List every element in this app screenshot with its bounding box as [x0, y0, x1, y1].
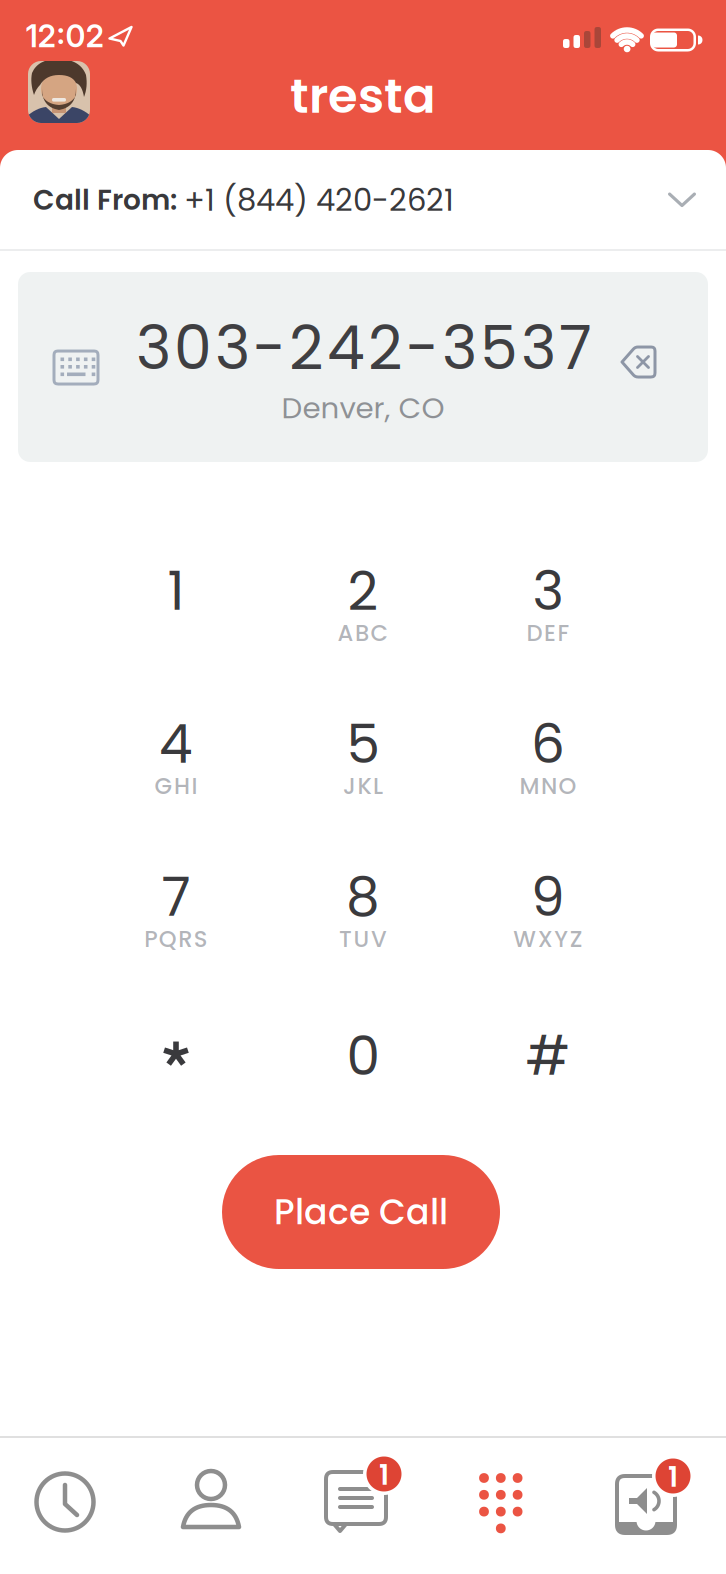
staticText: JKL: [343, 770, 383, 802]
staticText: 8: [346, 860, 380, 934]
button[interactable]: 3: [478, 521, 618, 661]
button[interactable]: Call From number picker: [0, 152, 726, 248]
staticText: 12:02: [25, 18, 104, 54]
button[interactable]: Recents: [32, 1469, 98, 1535]
staticText: 1: [167, 554, 184, 628]
staticText: TUV: [339, 923, 387, 955]
staticText: +1 (844) 420-2621: [184, 178, 454, 221]
button[interactable]: Place Call: [222, 1155, 500, 1269]
staticText: tresta: [290, 62, 436, 130]
staticText: 5: [346, 707, 379, 781]
staticText: MNO: [519, 770, 576, 802]
button[interactable]: 2: [293, 521, 433, 661]
button[interactable]: Keypad: [471, 1468, 531, 1538]
button[interactable]: Delete digit: [620, 345, 670, 389]
staticText: ABC: [337, 617, 388, 649]
button[interactable]: Profile: [28, 61, 90, 123]
staticText: Denver, CO: [281, 387, 444, 429]
button[interactable]: 8: [293, 827, 433, 967]
button[interactable]: 9: [478, 827, 618, 967]
staticText: 9: [531, 860, 565, 934]
button[interactable]: Voicemail: [600, 1460, 700, 1540]
button[interactable]: 4: [106, 674, 246, 814]
staticText: Place Call: [274, 1188, 448, 1236]
staticText: 4: [159, 707, 193, 781]
button[interactable]: 0: [293, 986, 433, 1126]
button[interactable]: 5: [293, 674, 433, 814]
staticText: 1: [379, 1455, 389, 1495]
button[interactable]: Contacts: [178, 1469, 244, 1535]
button[interactable]: *: [106, 984, 246, 1124]
button[interactable]: 6: [478, 674, 618, 814]
staticText: 2: [347, 554, 378, 628]
staticText: DEF: [526, 617, 569, 649]
staticText: #: [525, 1019, 570, 1093]
staticText: 7: [161, 860, 190, 934]
staticText: 6: [531, 707, 565, 781]
button[interactable]: Show keyboard: [48, 344, 104, 390]
button[interactable]: Messages: [310, 1458, 410, 1538]
staticText: PQRS: [144, 923, 208, 955]
button[interactable]: 7: [106, 827, 246, 967]
staticText: 1: [668, 1457, 678, 1497]
staticText: 303-242-3537: [136, 306, 592, 390]
staticText: 3: [532, 554, 563, 628]
button[interactable]: #: [478, 986, 618, 1126]
staticText: 0: [346, 1019, 379, 1093]
button[interactable]: 1: [106, 521, 246, 661]
staticText: GHI: [154, 770, 197, 802]
staticText: WXYZ: [513, 923, 583, 955]
staticText: Call From:: [33, 180, 177, 220]
